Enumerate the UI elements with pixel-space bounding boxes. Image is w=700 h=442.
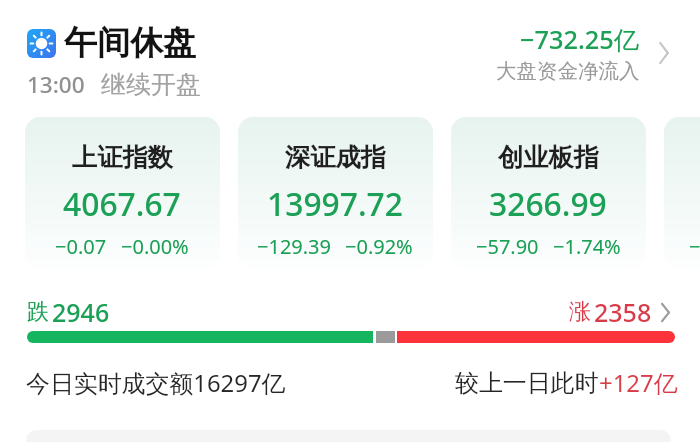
staticText: 上证指数 — [72, 142, 173, 174]
staticText: +127亿 — [599, 366, 678, 399]
staticText: −0.00% — [121, 233, 189, 260]
button[interactable]: 上证指数 — [25, 117, 220, 268]
button[interactable]: 创业板指 — [451, 117, 646, 268]
staticText: 3266.99 — [489, 182, 607, 225]
staticText: −0.07 — [55, 233, 107, 260]
button[interactable]: 跌 — [27, 295, 671, 329]
staticText: 创业板指 — [498, 142, 599, 174]
staticText: 13997.72 — [267, 182, 403, 225]
staticText: −1.74% — [553, 233, 621, 260]
staticText: −57.90 — [476, 233, 539, 260]
staticText: −732.25亿 — [520, 22, 640, 57]
staticText: 继续开盘 — [101, 69, 201, 100]
staticText: 今日实时成交额16297亿 — [26, 366, 286, 399]
staticText: 午间休盘 — [64, 22, 196, 64]
staticText: 2946 — [52, 295, 110, 329]
button[interactable]: −732.25亿 — [496, 22, 670, 84]
button[interactable]: 深证成指 — [238, 117, 433, 268]
staticText: 深证成指 — [285, 142, 386, 174]
button[interactable]: 科创50 — [664, 117, 700, 268]
staticText: 跌 — [27, 298, 49, 326]
staticText: 涨 — [569, 298, 591, 326]
staticText: −129.39 — [257, 233, 331, 260]
staticText: 大盘资金净流入 — [496, 58, 640, 84]
staticText: 2358 — [594, 295, 652, 329]
staticText: −0.92% — [345, 233, 413, 260]
staticText: 13:00 — [27, 69, 85, 100]
staticText: 较上一日此时 — [455, 368, 599, 398]
staticText: −10.82 — [689, 233, 700, 260]
staticText: 4067.67 — [63, 182, 181, 225]
other: 大盘资金净流入详情 — [658, 42, 670, 64]
